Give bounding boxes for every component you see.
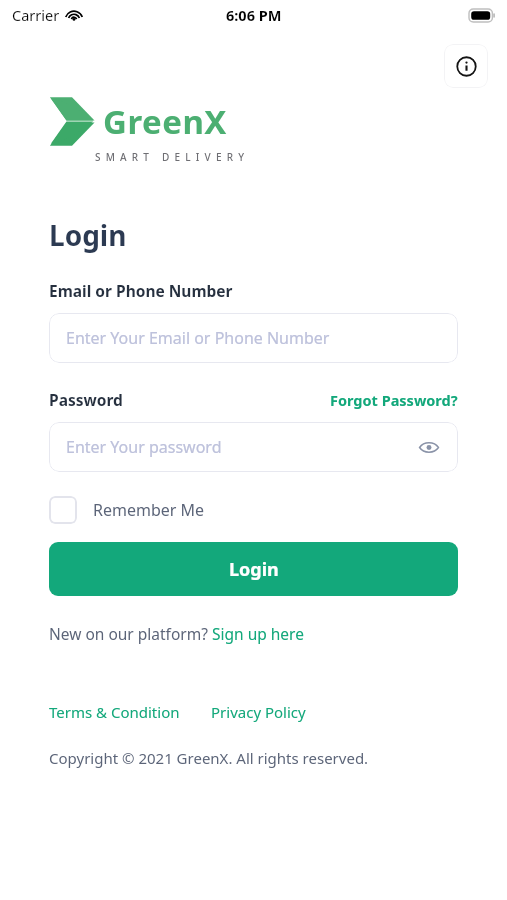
button[interactable]: Login [49, 542, 458, 596]
staticText: Login [49, 216, 127, 254]
staticText: Forgot Password? [330, 390, 458, 410]
button[interactable]: Enter Your password [49, 422, 458, 472]
button[interactable]: New on our platform? Sign up here [49, 623, 304, 644]
staticText: Terms & Condition [49, 702, 180, 722]
staticText: New on our platform? Sign up here [49, 623, 304, 644]
staticText: Email or Phone Number [49, 280, 233, 301]
staticText: Remember Me [93, 499, 205, 521]
button[interactable]: Forgot Password? [330, 390, 458, 410]
staticText: Enter Your Email or Phone Number [66, 327, 330, 349]
button[interactable]: Show password [416, 434, 442, 460]
button[interactable]: Enter Your Email or Phone Number [49, 313, 458, 363]
staticText: SMART DELIVERY [95, 150, 250, 164]
staticText: Enter Your password [66, 436, 222, 458]
staticText: Copyright © 2021 GreenX. All rights rese… [49, 748, 369, 768]
staticText: Password [49, 389, 123, 410]
staticText: GreenX [103, 99, 227, 144]
button[interactable]: Remember Me [49, 496, 205, 524]
staticText: Login [229, 557, 279, 582]
button[interactable]: Information [444, 44, 488, 88]
staticText: Carrier [12, 5, 60, 25]
staticText: 6:06 PM [226, 5, 282, 25]
button[interactable]: Privacy Policy [211, 702, 306, 722]
button[interactable]: Terms & Condition [49, 702, 180, 722]
staticText: Privacy Policy [211, 702, 306, 722]
